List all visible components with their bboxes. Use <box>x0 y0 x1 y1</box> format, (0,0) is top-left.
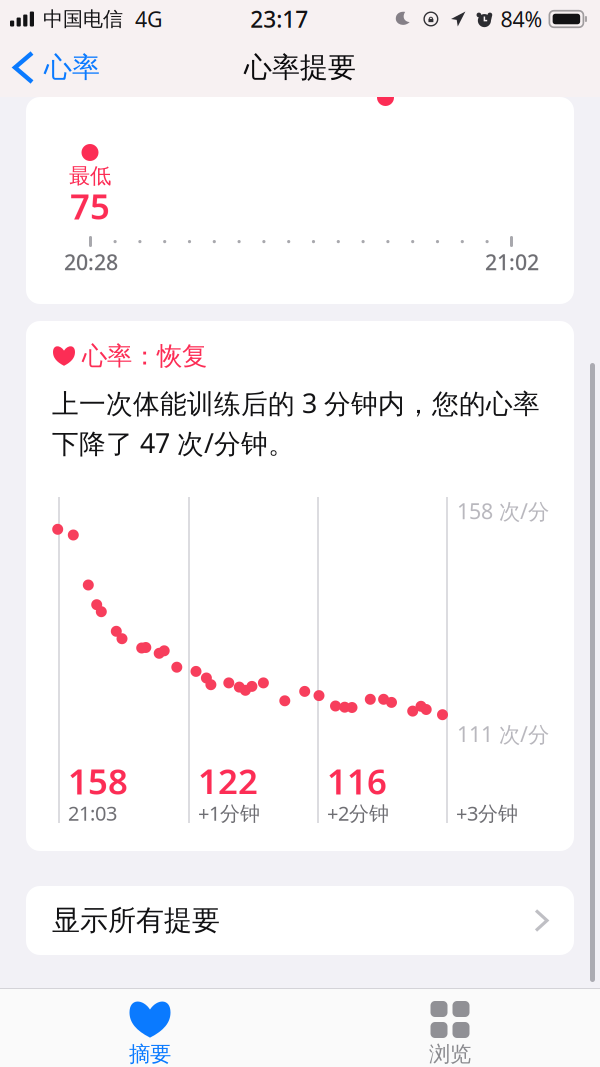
staticText: 摘要 <box>129 1041 171 1067</box>
staticText: 122 <box>198 758 258 804</box>
button[interactable]: 摘要 <box>0 989 300 1067</box>
staticText: 心率：恢复 <box>82 340 207 371</box>
staticText: 21:03 <box>68 800 117 826</box>
staticText: 显示所有提要 <box>52 903 220 938</box>
staticText: 75 <box>70 183 110 229</box>
staticText: 158 次/分 <box>457 497 549 525</box>
staticText: +1分钟 <box>198 800 260 826</box>
staticText: 上一次体能训练后的 3 分钟内，您的心率 <box>52 385 540 421</box>
staticText: +2分钟 <box>327 800 389 826</box>
staticText: 心率 <box>44 50 100 85</box>
staticText: 158 <box>68 758 128 804</box>
staticText: 最低 <box>69 163 111 189</box>
staticText: 中国电信 <box>43 7 123 31</box>
button[interactable]: 浏览 <box>300 989 600 1067</box>
staticText: 20:28 <box>64 248 118 276</box>
staticText: 21:02 <box>485 248 539 276</box>
staticText: 116 <box>327 758 387 804</box>
staticText: +3分钟 <box>456 800 518 826</box>
staticText: 111 次/分 <box>457 720 549 748</box>
staticText: 心率提要 <box>244 50 356 85</box>
staticText: 23:17 <box>250 4 308 34</box>
button[interactable]: 显示所有提要 <box>26 886 574 955</box>
staticText: 浏览 <box>429 1041 471 1067</box>
staticText: 下降了 47 次/分钟。 <box>52 425 295 461</box>
staticText: 84% <box>500 5 542 33</box>
staticText: 4G <box>135 5 163 33</box>
button[interactable]: 心率 <box>0 38 125 97</box>
